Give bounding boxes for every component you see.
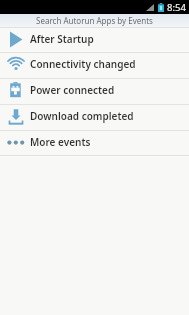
staticText: Download completed [30,109,134,123]
staticText: Search Autorun Apps by Events [36,15,153,26]
staticText: Power connected [30,83,115,97]
button[interactable]: After Startup [0,27,189,52]
button[interactable]: Download completed [0,104,189,130]
button[interactable]: More events [0,130,189,155]
staticText: 8:54 [167,1,186,14]
staticText: After Startup [30,32,94,46]
button[interactable]: Connectivity changed [0,52,189,78]
button[interactable]: Power connected [0,78,189,104]
staticText: Connectivity changed [30,57,136,71]
button[interactable]: Search Autorun Apps by Events [0,14,189,27]
staticText: More events [30,135,91,149]
